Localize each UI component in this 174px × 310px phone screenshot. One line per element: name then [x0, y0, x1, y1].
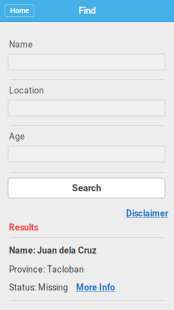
staticText: Search — [72, 182, 101, 193]
button[interactable]: More Info — [76, 282, 115, 293]
staticText: Age — [9, 131, 25, 142]
staticText: Results — [9, 222, 38, 233]
staticText: Name: Juan dela Cruz — [9, 245, 96, 256]
button[interactable] — [0, 54, 174, 70]
staticText: Location — [9, 85, 44, 96]
staticText: More Info — [76, 282, 115, 293]
staticText: Name — [9, 39, 33, 50]
button[interactable] — [0, 146, 174, 162]
button[interactable]: Disclaimer — [126, 208, 168, 219]
staticText: Province: Tacloban — [9, 264, 84, 275]
staticText: Status: Missing — [9, 282, 68, 293]
button[interactable]: Home — [5, 4, 34, 16]
button[interactable] — [0, 100, 174, 116]
staticText: Find — [78, 5, 95, 16]
button[interactable]: Search — [0, 178, 174, 198]
staticText: Home — [10, 6, 29, 15]
staticText: Disclaimer — [126, 208, 168, 219]
